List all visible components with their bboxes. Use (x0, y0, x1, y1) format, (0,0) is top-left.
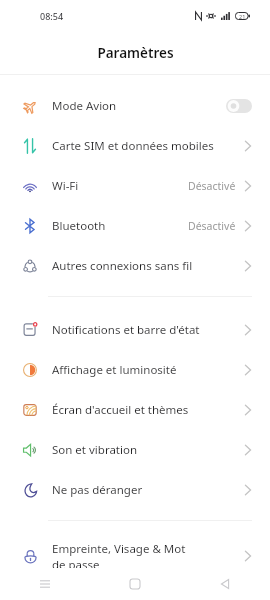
button[interactable]: Affichage et luminosité (0, 350, 270, 390)
button[interactable]: Autres connexions sans fil (0, 246, 270, 286)
button[interactable]: Bluetooth (0, 206, 270, 246)
staticText: Affichage et luminosité (52, 362, 177, 378)
staticText: Paramètres (97, 44, 174, 62)
button[interactable]: Notifications et barre d'état (0, 310, 270, 350)
staticText: Notifications et barre d'état (52, 322, 200, 338)
staticText: Désactivé (188, 219, 236, 233)
staticText: 08:54 (40, 10, 64, 22)
staticText: Son et vibration (52, 442, 138, 458)
staticText: Carte SIM et données mobiles (52, 138, 214, 154)
staticText: Écran d'accueil et thèmes (52, 402, 189, 418)
button[interactable]: Empreinte, Visage & Mot de passe (0, 534, 270, 578)
button[interactable]: Écran d'accueil et thèmes (0, 390, 270, 430)
staticText: Wi-Fi (52, 178, 79, 194)
staticText: Autres connexions sans fil (52, 258, 193, 274)
staticText: Désactivé (188, 179, 236, 193)
button[interactable]: Home (90, 568, 180, 600)
staticText: Bluetooth (52, 218, 106, 234)
button[interactable]: Back (180, 568, 270, 600)
button[interactable]: Ne pas déranger (0, 470, 270, 510)
staticText: Mode Avion (52, 98, 117, 114)
button[interactable]: Wi-Fi (0, 166, 270, 206)
staticText: 21 (239, 13, 246, 20)
button[interactable]: Recent apps (0, 568, 90, 600)
button[interactable]: Toggle airplane mode (226, 99, 252, 113)
staticText: Ne pas déranger (52, 482, 143, 498)
button[interactable]: Son et vibration (0, 430, 270, 470)
button[interactable]: Mode Avion (0, 86, 270, 126)
staticText: Empreinte, Visage & Mot de passe (52, 541, 200, 572)
button[interactable]: Carte SIM et données mobiles (0, 126, 270, 166)
